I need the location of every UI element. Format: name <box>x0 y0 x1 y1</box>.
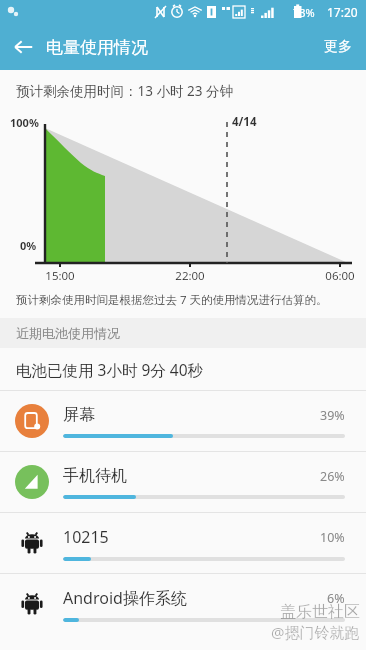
staticText: 06:00 <box>320 268 360 284</box>
staticText: 更多 <box>324 38 352 56</box>
staticText: 电池已使用 3小时 9分 40秒 <box>16 359 204 380</box>
button[interactable]: 屏幕 <box>0 391 366 451</box>
staticText: 100% <box>10 115 39 130</box>
staticText: 17:20 <box>327 4 358 20</box>
staticText: Android操作系统 <box>63 587 187 609</box>
staticText: 电量使用情况 <box>46 37 148 58</box>
staticText: 盖乐世社区 <box>280 602 360 622</box>
staticText: 0% <box>20 238 37 253</box>
staticText: @摁门铃就跑 <box>271 622 360 642</box>
staticText: 73% <box>293 5 315 20</box>
button[interactable]: Android操作系统 <box>0 574 366 634</box>
button[interactable]: 更多 <box>310 26 366 68</box>
staticText: 手机待机 <box>63 466 127 486</box>
staticText: 预计剩余使用时间：13 小时 23 分钟 <box>16 82 233 100</box>
button[interactable]: 手机待机 <box>0 452 366 512</box>
staticText: 15:00 <box>40 268 80 284</box>
staticText: 22:00 <box>170 268 210 284</box>
staticText: 39% <box>320 407 345 424</box>
button[interactable]: 10215 <box>0 513 366 573</box>
staticText: 4/14 <box>232 114 257 130</box>
staticText: 26% <box>320 468 345 485</box>
staticText: 近期电池使用情况 <box>16 325 120 341</box>
staticText: 10215 <box>63 526 109 548</box>
staticText: 6% <box>327 590 345 607</box>
button[interactable]: Back <box>0 24 46 70</box>
staticText: 10% <box>320 529 345 546</box>
staticText: 预计剩余使用时间是根据您过去 7 天的使用情况进行估算的。 <box>16 292 328 308</box>
staticText: 屏幕 <box>63 405 95 425</box>
